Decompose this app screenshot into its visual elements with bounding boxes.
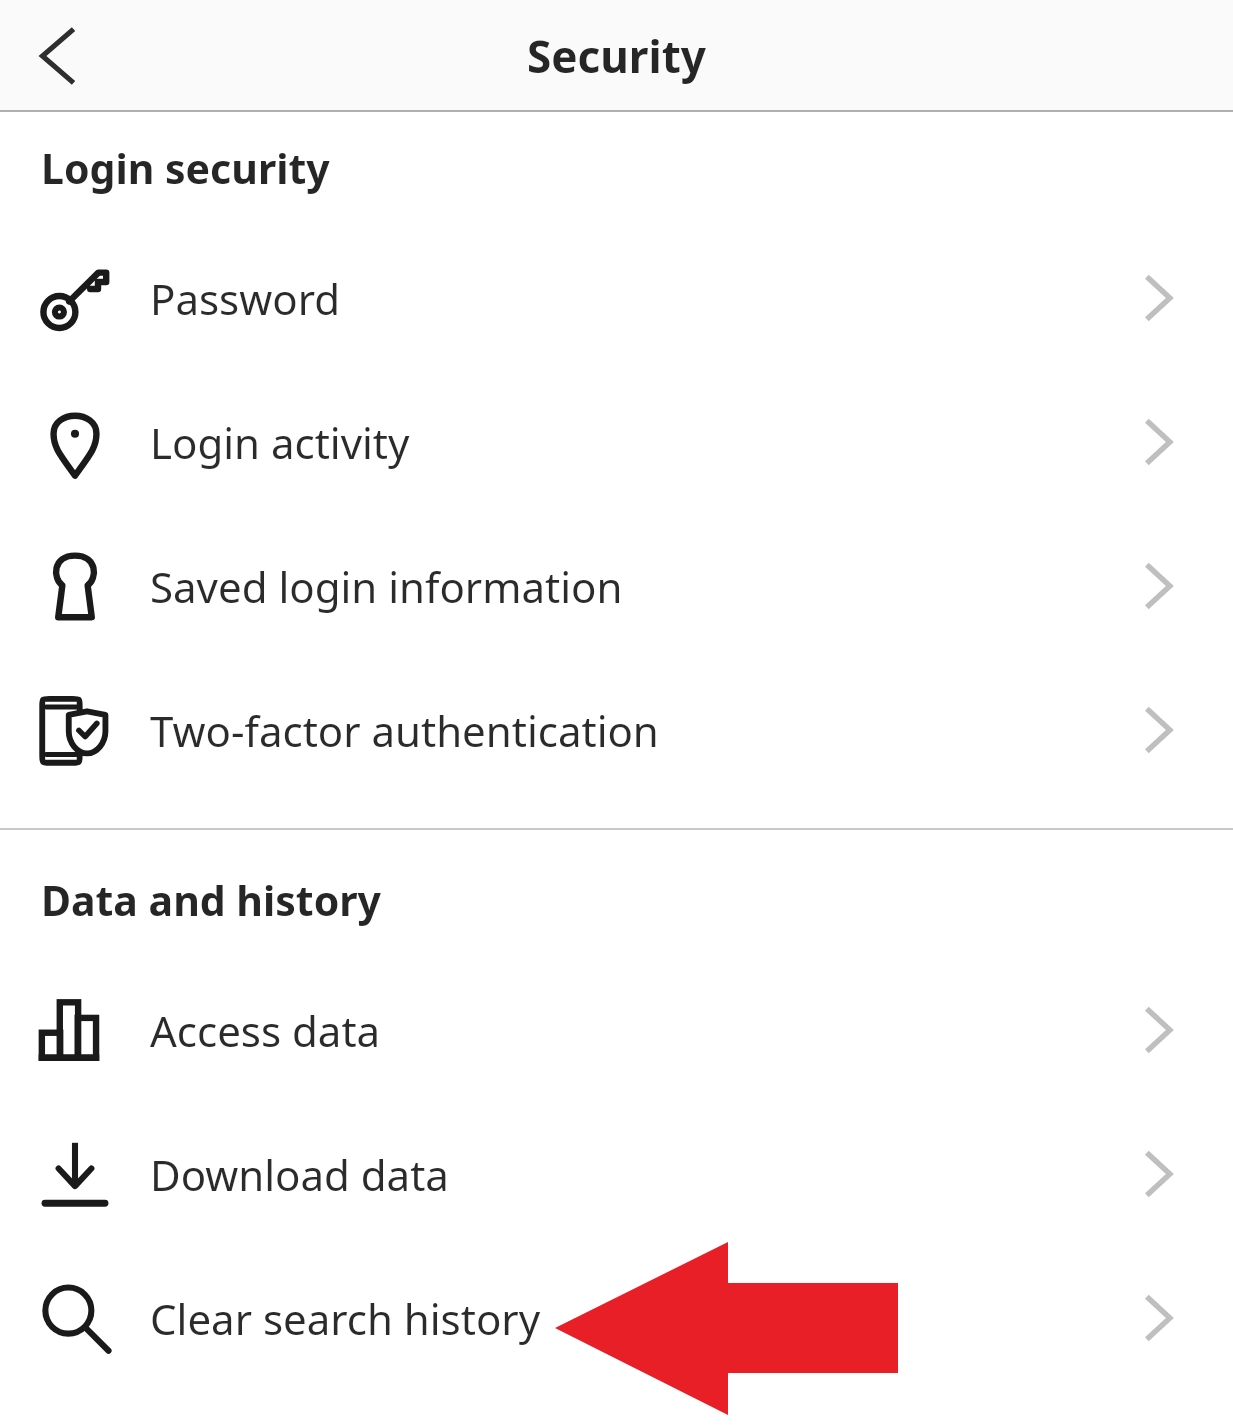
staticText: Clear search history — [150, 1290, 541, 1347]
staticText: Two-factor authentication — [150, 702, 659, 759]
button[interactable]: Login activity — [0, 370, 1233, 514]
button[interactable]: Saved login information — [0, 514, 1233, 658]
staticText: Download data — [150, 1146, 449, 1203]
staticText: Password — [150, 270, 340, 327]
button[interactable]: Password — [0, 226, 1233, 370]
staticText: Data and history — [41, 872, 382, 928]
button[interactable]: Download data — [0, 1102, 1233, 1246]
staticText: Login security — [41, 140, 330, 196]
button[interactable]: Two-factor authentication — [0, 658, 1233, 802]
staticText: Saved login information — [150, 558, 623, 615]
staticText: Security — [527, 26, 706, 86]
button[interactable]: Access data — [0, 958, 1233, 1102]
staticText: Access data — [150, 1002, 381, 1059]
button[interactable]: Back — [8, 14, 92, 98]
staticText: Login activity — [150, 414, 410, 471]
button[interactable]: Clear search history — [0, 1246, 1233, 1390]
